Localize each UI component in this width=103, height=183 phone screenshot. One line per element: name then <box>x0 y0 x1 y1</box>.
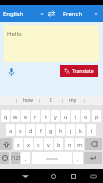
button[interactable]: b <box>54 138 63 150</box>
staticText: how <box>23 97 33 104</box>
button[interactable]: z <box>14 138 23 150</box>
staticText: z <box>17 141 20 148</box>
staticText: q <box>4 113 8 120</box>
staticText: I <box>50 97 52 104</box>
staticText: e <box>24 113 28 120</box>
button[interactable]: , <box>21 152 30 164</box>
staticText: o <box>84 113 88 120</box>
button[interactable]: Voice input <box>6 66 17 77</box>
staticText: x <box>27 141 30 148</box>
staticText: Translate <box>72 68 94 75</box>
staticText: French <box>63 10 83 18</box>
button[interactable]: u <box>61 110 70 122</box>
staticText: g <box>49 127 53 134</box>
button[interactable]: o <box>81 110 90 122</box>
button[interactable]: shift <box>0 138 12 150</box>
button[interactable]: g <box>46 124 55 136</box>
button[interactable]: i <box>71 110 80 122</box>
staticText: p <box>95 113 99 120</box>
button[interactable]: x <box>24 138 33 150</box>
button[interactable]: h <box>56 124 65 136</box>
staticText: v <box>47 141 50 148</box>
button[interactable]: q <box>1 110 10 122</box>
button[interactable]: n <box>65 138 74 150</box>
button[interactable]: French <box>63 5 101 22</box>
staticText: my <box>69 97 77 104</box>
staticText: l <box>91 127 93 134</box>
staticText: h <box>59 127 63 134</box>
button[interactable]: v <box>44 138 53 150</box>
button[interactable]: p <box>92 110 101 122</box>
button[interactable]: Switch keyboard <box>86 169 100 183</box>
staticText: m <box>77 141 83 148</box>
button[interactable]: f <box>36 124 45 136</box>
button[interactable]: a <box>6 124 15 136</box>
button[interactable]: English <box>3 5 47 22</box>
staticText: . <box>77 155 79 162</box>
staticText: w <box>13 113 18 120</box>
button[interactable]: enter <box>84 152 102 164</box>
button[interactable]: e <box>21 110 30 122</box>
staticText: d <box>29 127 33 134</box>
button[interactable]: Recent apps <box>66 169 80 183</box>
button[interactable]: how <box>17 96 39 105</box>
button[interactable]: d <box>26 124 35 136</box>
button[interactable]: k <box>76 124 85 136</box>
staticText: a <box>9 127 13 134</box>
staticText: s <box>19 127 22 134</box>
staticText: i <box>75 113 77 120</box>
button[interactable]: Back <box>18 169 32 183</box>
staticText: t <box>45 113 47 120</box>
staticText: English <box>3 10 24 18</box>
staticText: c <box>37 141 40 148</box>
button[interactable]: s <box>16 124 25 136</box>
button[interactable]: l <box>87 124 96 136</box>
button[interactable]: t <box>41 110 50 122</box>
button[interactable]: back <box>85 138 102 150</box>
staticText: ?123 <box>11 155 20 161</box>
staticText: r <box>34 113 37 120</box>
button[interactable]: r <box>31 110 40 122</box>
button[interactable]: Home <box>46 169 60 183</box>
button[interactable]: c <box>34 138 43 150</box>
button[interactable]: m <box>75 138 84 150</box>
button[interactable]: w <box>11 110 20 122</box>
staticText: n <box>68 141 72 148</box>
staticText: j <box>70 127 72 134</box>
button[interactable]: Translate <box>60 65 98 77</box>
staticText: b <box>57 141 61 148</box>
button[interactable]: . <box>73 152 83 164</box>
staticText: k <box>79 127 82 134</box>
staticText: y <box>54 113 57 120</box>
staticText: Hello <box>7 30 22 38</box>
button[interactable]: y <box>51 110 60 122</box>
button[interactable]: ?123 <box>11 152 20 164</box>
button[interactable]: my <box>62 96 84 105</box>
button[interactable]: I <box>40 96 62 105</box>
button[interactable]: Hello <box>4 25 99 62</box>
button[interactable]: j <box>66 124 75 136</box>
staticText: , <box>25 155 27 162</box>
button[interactable]: emoji <box>0 152 9 164</box>
button[interactable]: space <box>32 152 72 164</box>
staticText: f <box>40 127 42 134</box>
staticText: u <box>64 113 68 120</box>
button[interactable]: Swap languages <box>44 5 58 22</box>
